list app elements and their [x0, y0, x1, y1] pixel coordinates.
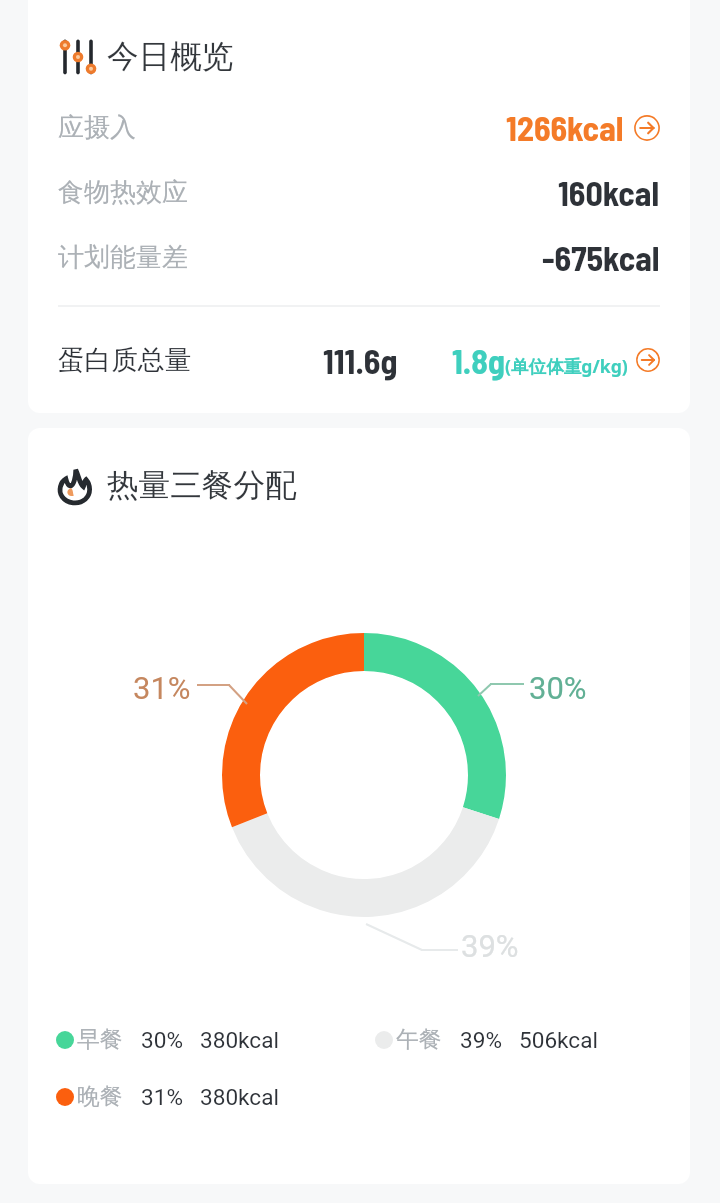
staticText: 计划能量差: [58, 241, 188, 274]
staticText: 506kcal: [519, 1027, 598, 1053]
staticText: 380kcal: [200, 1027, 279, 1053]
staticText: 早餐: [77, 1025, 123, 1054]
staticText: 晚餐: [77, 1082, 123, 1111]
staticText: 1266kcal: [506, 107, 624, 148]
staticText: 31%: [141, 1084, 183, 1110]
button[interactable]: 晚餐: [56, 1082, 279, 1111]
button[interactable]: 早餐: [56, 1025, 375, 1054]
button[interactable]: 查看详情: [636, 348, 660, 372]
staticText: 160kcal: [558, 172, 660, 213]
staticText: 蛋白质总量: [58, 343, 191, 377]
staticText: 111.6g: [323, 340, 398, 381]
staticText: 食物热效应: [58, 176, 188, 209]
button[interactable]: 食物热效应: [58, 160, 660, 225]
staticText: 应摄入: [58, 111, 136, 144]
staticText: 39%: [461, 928, 519, 964]
staticText: 1.8g: [452, 340, 505, 381]
staticText: 380kcal: [200, 1084, 279, 1110]
staticText: 30%: [529, 670, 587, 706]
staticText: 39%: [460, 1027, 502, 1053]
button[interactable]: 午餐: [375, 1025, 598, 1054]
staticText: -675kcal: [542, 237, 660, 278]
staticText: 午餐: [396, 1025, 442, 1054]
button[interactable]: 蛋白质总量: [58, 307, 660, 413]
staticText: 31%: [133, 670, 191, 706]
staticText: 30%: [141, 1027, 183, 1053]
staticText: 今日概览: [107, 37, 234, 77]
button[interactable]: 查看详情: [634, 115, 660, 141]
button[interactable]: 计划能量差: [58, 225, 660, 290]
staticText: (单位体重g/kg): [505, 354, 628, 378]
staticText: 热量三餐分配: [107, 466, 297, 506]
button[interactable]: 应摄入: [58, 95, 660, 160]
